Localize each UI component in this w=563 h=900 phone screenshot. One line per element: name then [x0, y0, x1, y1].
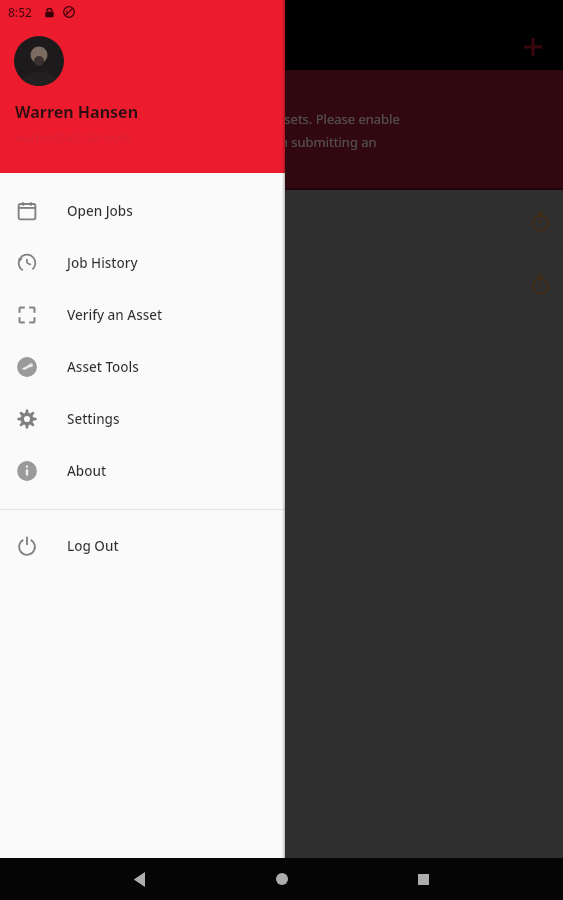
- button[interactable]: [0, 253, 563, 315]
- staticText: location services. Location is only used…: [16, 133, 377, 151]
- button[interactable]: Home: [262, 859, 302, 899]
- staticText: Verify an Asset: [67, 306, 163, 324]
- button[interactable]: Asset Tools: [0, 341, 285, 393]
- staticText: warren@abcservices: [15, 129, 131, 145]
- staticText: About: [67, 462, 107, 480]
- button[interactable]: [285, 0, 563, 858]
- button[interactable]: Verify an Asset: [0, 289, 285, 341]
- staticText: Open Jobs: [67, 202, 133, 220]
- button[interactable]: Open Jobs: [0, 185, 285, 237]
- button[interactable]: About: [0, 445, 285, 497]
- staticText: Warren Hansen: [15, 101, 139, 123]
- staticText: Log Out: [67, 537, 119, 555]
- staticText: Job History: [67, 254, 138, 272]
- staticText: Settings: [67, 410, 120, 428]
- button[interactable]: Recents: [403, 859, 443, 899]
- button[interactable]: Job History: [0, 237, 285, 289]
- button[interactable]: Profile photo: [14, 36, 64, 86]
- button[interactable]: [0, 190, 563, 252]
- staticText: Asset Tools: [67, 358, 139, 376]
- staticText: 8:52: [8, 4, 32, 20]
- button[interactable]: Add: [511, 25, 555, 69]
- button[interactable]: Back: [120, 859, 160, 899]
- staticText: Location access is required for inspecti…: [16, 110, 400, 128]
- button[interactable]: Log Out: [0, 520, 285, 572]
- button[interactable]: Settings: [0, 393, 285, 445]
